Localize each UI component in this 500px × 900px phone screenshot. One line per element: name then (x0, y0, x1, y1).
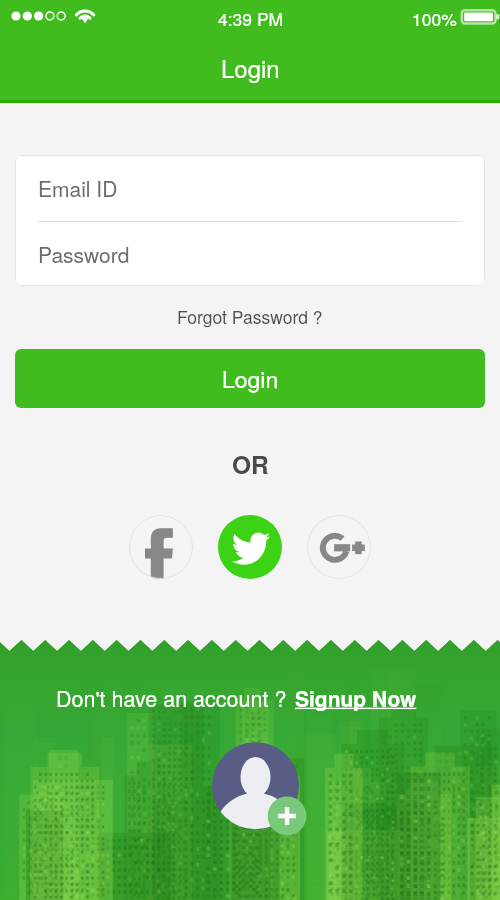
button[interactable]: Signup Now (295, 683, 417, 713)
staticText: Password (38, 239, 130, 269)
staticText: Forgot Password ? (177, 304, 323, 329)
button[interactable]: Sign in with Google Plus (307, 515, 371, 579)
staticText: Don't have an account ? (56, 682, 287, 713)
button[interactable]: Password (15, 222, 485, 286)
button[interactable]: Email ID (15, 155, 485, 221)
staticText: OR (232, 446, 269, 481)
button[interactable]: Add profile photo (212, 738, 307, 833)
button[interactable]: Forgot Password ? (167, 302, 333, 331)
button[interactable]: Login (15, 349, 485, 408)
staticText: Email ID (38, 173, 118, 203)
staticText: 100% (412, 6, 457, 31)
staticText: Login (222, 362, 279, 395)
staticText: Signup Now (295, 683, 417, 713)
staticText: 4:39 PM (218, 6, 284, 31)
staticText: Login (221, 50, 280, 84)
button[interactable]: Sign in with Twitter (218, 515, 282, 579)
button[interactable]: Sign in with Facebook (129, 515, 193, 579)
